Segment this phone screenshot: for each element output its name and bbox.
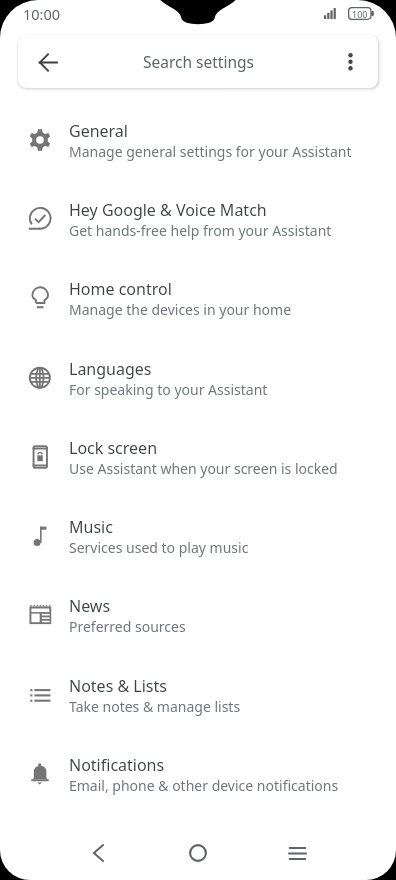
staticText: Notifications [69, 754, 165, 776]
staticText: Home control [69, 278, 172, 300]
staticText: Get hands-free help from your Assistant [69, 221, 332, 240]
staticText: Use Assistant when your screen is locked [69, 459, 338, 478]
staticText: News [69, 595, 111, 617]
staticText: Manage general settings for your Assista… [69, 142, 352, 161]
button[interactable]: Notes & Lists [0, 655, 396, 734]
staticText: Search settings [143, 51, 254, 72]
staticText: Manage the devices in your home [69, 300, 292, 319]
staticText: Lock screen [69, 437, 158, 459]
button[interactable]: Back [25, 39, 71, 85]
button[interactable]: Home [175, 830, 221, 876]
button[interactable]: Hey Google & Voice Match [0, 179, 396, 258]
staticText: Music [69, 516, 113, 538]
staticText: Preferred sources [69, 617, 186, 636]
staticText: General [69, 120, 128, 142]
staticText: For speaking to your Assistant [69, 380, 268, 399]
staticText: Notes & Lists [69, 675, 167, 697]
staticText: Hey Google & Voice Match [69, 199, 267, 221]
staticText: 100 [352, 8, 368, 20]
staticText: Take notes & manage lists [69, 697, 241, 716]
button[interactable]: Notifications [0, 734, 396, 813]
button[interactable]: News [0, 575, 396, 654]
button[interactable]: Recent apps [274, 830, 320, 876]
button[interactable]: Music [0, 496, 396, 575]
staticText: 10:00 [23, 4, 61, 24]
button[interactable]: Lock screen [0, 417, 396, 496]
button[interactable]: Back [75, 830, 121, 876]
button[interactable]: Home control [0, 258, 396, 337]
staticText: Services used to play music [69, 538, 249, 557]
button[interactable]: Languages [0, 338, 396, 417]
staticText: Email, phone & other device notification… [69, 776, 339, 795]
button[interactable]: General [0, 100, 396, 179]
button[interactable]: More options [328, 40, 372, 84]
staticText: Languages [69, 358, 152, 380]
